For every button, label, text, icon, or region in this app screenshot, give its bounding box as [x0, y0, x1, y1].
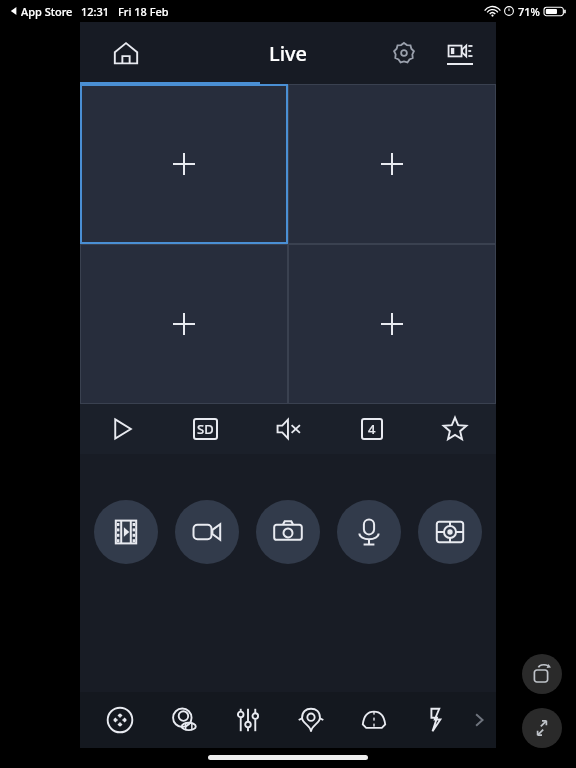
button[interactable]: Alarm: [405, 692, 468, 748]
button[interactable]: Preset: [279, 692, 342, 748]
button[interactable]: Playback: [94, 500, 158, 564]
button[interactable]: Detection: [418, 500, 482, 564]
staticText: SD: [197, 420, 214, 438]
button[interactable]: Record status: [382, 31, 426, 75]
button[interactable]: Play: [80, 404, 164, 454]
button[interactable]: Layout: [330, 404, 413, 454]
button[interactable]: Favorite: [413, 404, 496, 454]
staticText: Fri 18 Feb: [118, 4, 169, 19]
button[interactable]: Add camera: [288, 84, 496, 244]
button[interactable]: Talk: [337, 500, 401, 564]
staticText: Live: [269, 40, 308, 67]
staticText: 4: [368, 420, 376, 438]
button[interactable]: Exit fullscreen: [522, 708, 562, 748]
button[interactable]: Home: [104, 31, 148, 75]
staticText: App Store: [21, 4, 73, 19]
button[interactable]: Image settings: [216, 692, 279, 748]
button[interactable]: More: [466, 707, 492, 733]
button[interactable]: Snapshot: [256, 500, 320, 564]
button[interactable]: Record video: [175, 500, 239, 564]
button[interactable]: PTZ: [88, 692, 152, 748]
button[interactable]: Add camera: [80, 244, 288, 404]
button[interactable]: Camera list: [438, 31, 482, 75]
button[interactable]: Add camera: [288, 244, 496, 404]
button[interactable]: Rotate: [522, 654, 562, 694]
button[interactable]: SD quality: [164, 404, 247, 454]
button[interactable]: Mute: [247, 404, 330, 454]
staticText: 71%: [518, 4, 540, 19]
staticText: 12:31: [81, 4, 110, 19]
button[interactable]: Wiper: [342, 692, 405, 748]
button[interactable]: Zoom: [152, 692, 216, 748]
button[interactable]: Add camera: [80, 84, 288, 244]
